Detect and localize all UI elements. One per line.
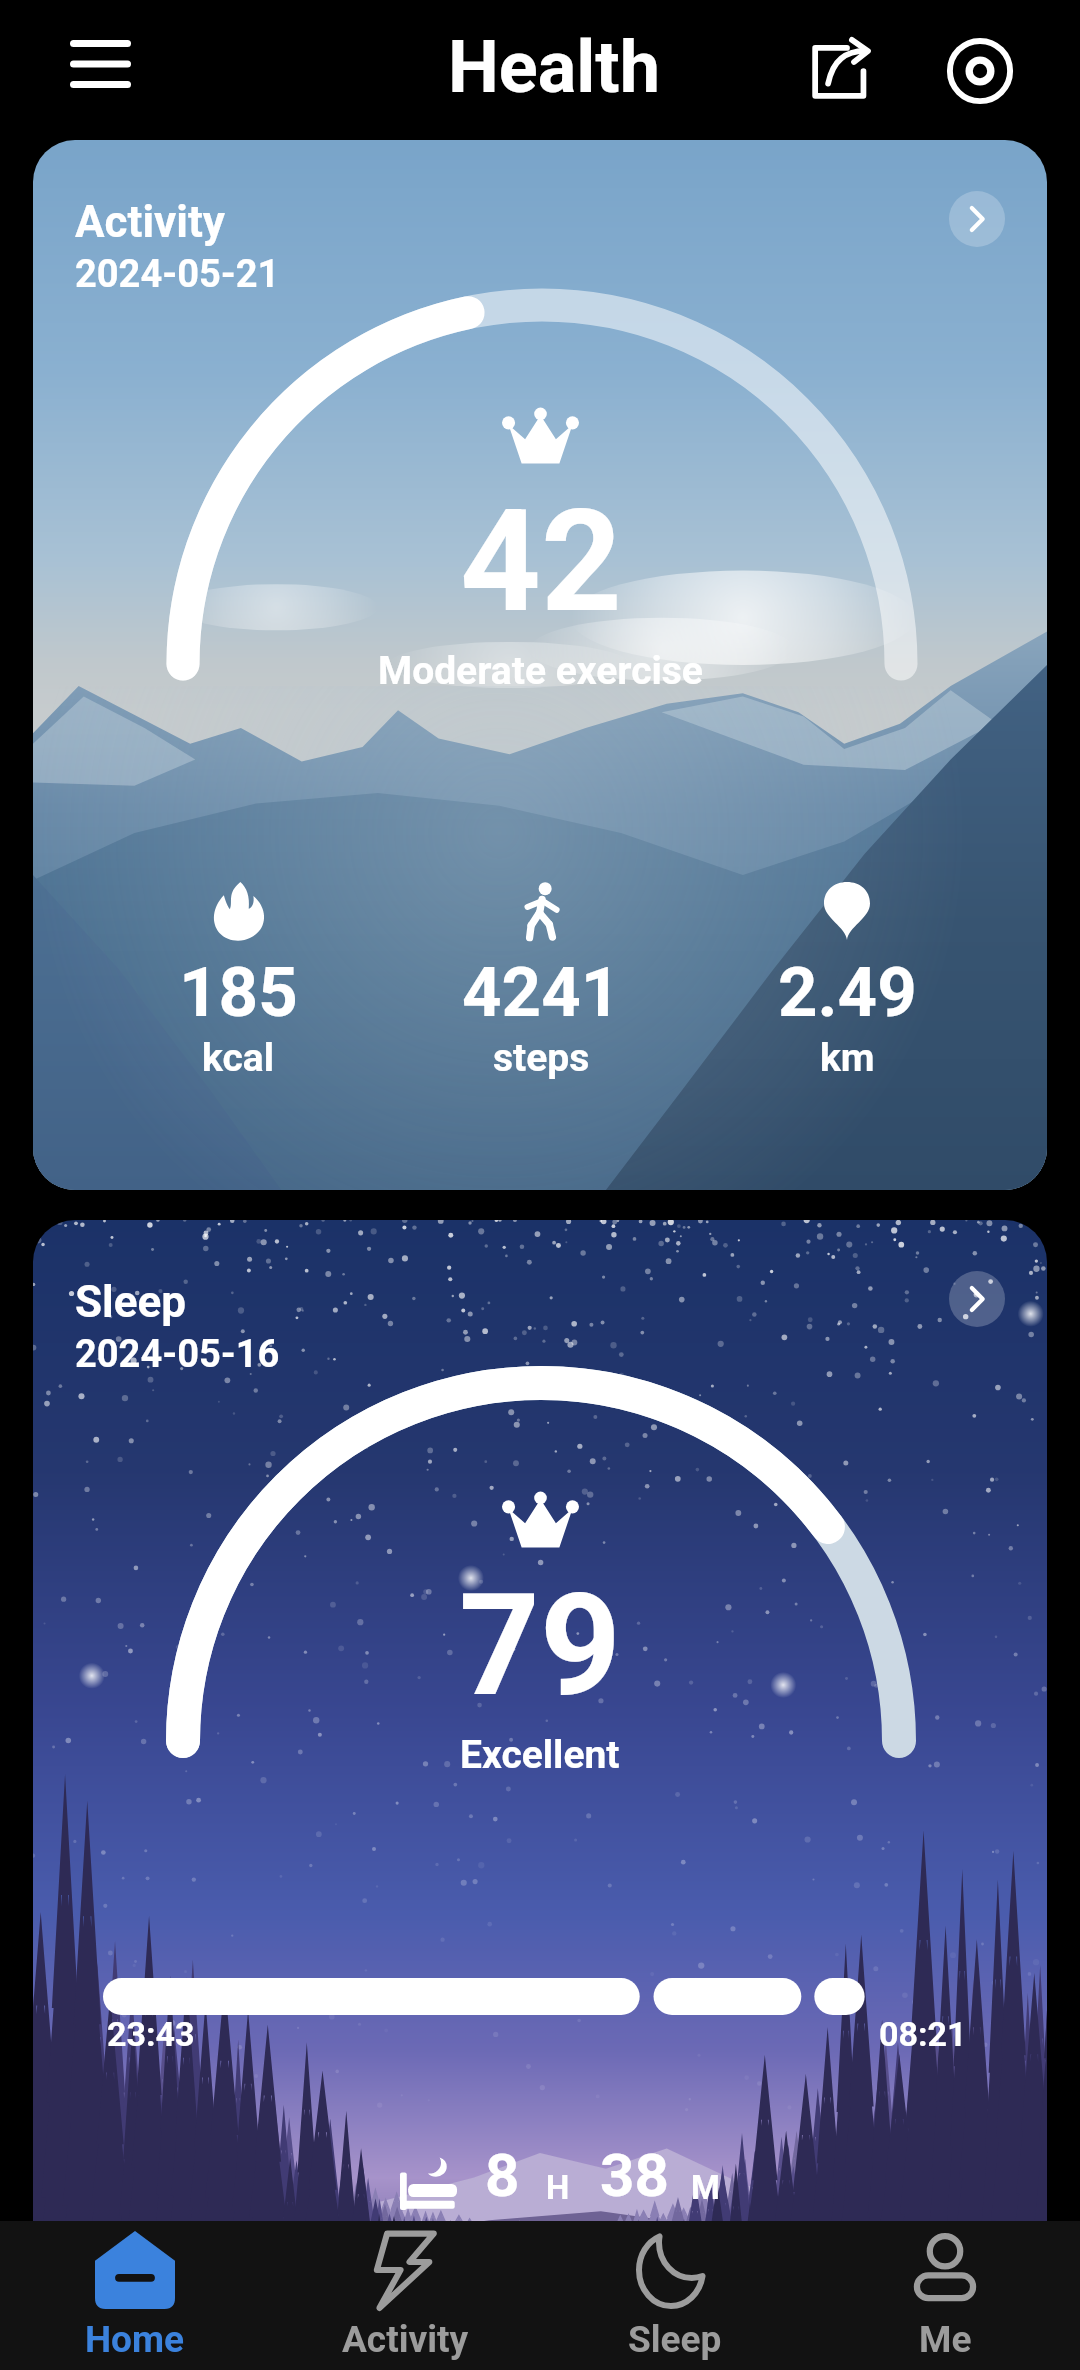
staticText: 8 xyxy=(485,2140,520,2210)
staticText: Excellent xyxy=(460,1732,620,1778)
staticText: M xyxy=(691,2168,720,2207)
staticText: 2.49 xyxy=(778,952,917,1033)
staticText: kcal xyxy=(202,1035,274,1081)
staticText: 38 xyxy=(600,2140,669,2210)
staticText: Home xyxy=(85,2318,185,2361)
staticText: Activity xyxy=(75,196,225,248)
staticText: Sleep xyxy=(75,1276,187,1328)
staticText: Activity xyxy=(342,2318,469,2361)
button[interactable]: Menu xyxy=(38,14,162,114)
staticText: Me xyxy=(919,2318,972,2361)
button[interactable]: Share xyxy=(785,16,895,126)
button[interactable]: Sleep xyxy=(540,2221,810,2370)
button[interactable]: Home xyxy=(0,2221,270,2370)
staticText: 4241 xyxy=(462,952,621,1033)
button[interactable]: Me xyxy=(810,2221,1080,2370)
button[interactable]: Record xyxy=(925,16,1035,126)
staticText: 42 xyxy=(460,479,622,644)
staticText: 2024-05-16 xyxy=(75,1332,280,1377)
button[interactable]: Activity xyxy=(270,2221,540,2370)
staticText: 08:21 xyxy=(879,2014,967,2054)
button[interactable]: Open Sleep details xyxy=(949,1271,1005,1327)
button[interactable]: Activity xyxy=(33,140,1047,1190)
staticText: Moderate exercise xyxy=(378,648,703,694)
staticText: H xyxy=(546,2168,570,2207)
staticText: steps xyxy=(493,1035,590,1081)
button[interactable]: Sleep xyxy=(33,1220,1047,2340)
staticText: Health xyxy=(448,25,660,109)
staticText: 23:43 xyxy=(107,2014,195,2054)
staticText: 2024-05-21 xyxy=(75,252,280,297)
staticText: 185 xyxy=(179,952,298,1033)
staticText: Sleep xyxy=(628,2318,722,2361)
button[interactable]: Open Activity details xyxy=(949,191,1005,247)
staticText: km xyxy=(820,1035,875,1081)
staticText: 79 xyxy=(459,1563,621,1728)
